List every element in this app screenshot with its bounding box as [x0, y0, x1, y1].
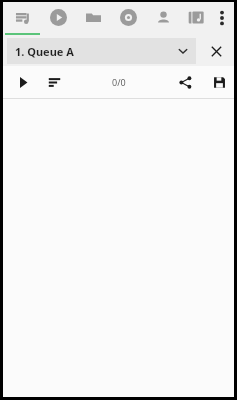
staticText: 0/0 — [112, 76, 126, 88]
button[interactable]: Share — [171, 66, 199, 98]
button[interactable]: Save — [205, 66, 233, 98]
button[interactable]: Sort — [41, 66, 67, 98]
button[interactable]: Close queue — [198, 36, 234, 66]
button[interactable]: Library — [182, 2, 210, 33]
button[interactable]: Queue — [9, 2, 37, 33]
button[interactable]: Folders — [79, 2, 107, 33]
button[interactable]: More options — [210, 2, 234, 33]
button[interactable]: Artists — [149, 2, 177, 33]
button[interactable]: Now playing — [44, 2, 72, 33]
button[interactable]: Play queue — [11, 66, 35, 98]
staticText: 1. Queue A — [15, 44, 170, 59]
button[interactable]: 1. Queue A — [7, 38, 196, 64]
button[interactable]: Albums — [114, 2, 142, 33]
